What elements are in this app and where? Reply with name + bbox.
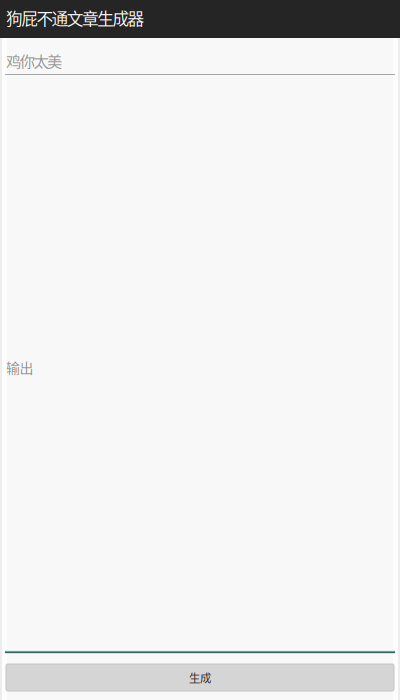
staticText: 输出 — [6, 357, 33, 377]
staticText: 生成 — [189, 669, 211, 686]
button[interactable]: 鸡你太美 — [0, 38, 400, 75]
button[interactable]: 生成 — [6, 664, 394, 691]
staticText: 狗屁不通文章生成器 — [6, 6, 145, 30]
staticText: 鸡你太美 — [6, 49, 62, 72]
